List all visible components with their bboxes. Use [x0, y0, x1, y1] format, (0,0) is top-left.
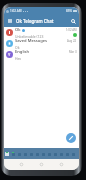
button[interactable]: Y: [4, 49, 79, 60]
staticText: Y: [8, 52, 11, 57]
button[interactable]: App 9: [53, 152, 57, 156]
staticText: 85%: [66, 9, 72, 13]
button[interactable]: Home: [38, 161, 45, 168]
staticText: 1:02 AM: [66, 28, 77, 32]
button[interactable]: Ok: [4, 27, 79, 38]
button[interactable]: App 5: [29, 152, 33, 156]
button[interactable]: App 4: [23, 152, 27, 156]
staticText: 1:02 AM: [10, 9, 22, 13]
button[interactable]: Back: [18, 161, 25, 168]
button[interactable]: App 11: [65, 152, 69, 156]
staticText: Unbelievable (123: [15, 34, 44, 38]
button[interactable]: App 8: [47, 152, 51, 156]
button[interactable]: Compose new message: [66, 133, 76, 143]
button[interactable]: App 7: [41, 152, 45, 156]
button[interactable]: Menu: [6, 17, 14, 25]
button[interactable]: Recents: [58, 161, 65, 168]
button[interactable]: App 6: [35, 152, 39, 156]
staticText: Saved Messages: [15, 38, 48, 44]
button[interactable]: App 3: [17, 152, 21, 156]
button[interactable]: App 10: [59, 152, 63, 156]
staticText: English: [15, 49, 30, 55]
staticText: Ok: [15, 45, 20, 49]
staticText: Aug 22: [67, 39, 77, 43]
staticText: Ok Telegram Chat: [16, 18, 54, 24]
button[interactable]: Search: [69, 17, 77, 25]
button[interactable]: App 1: [5, 152, 9, 156]
staticText: Hey: [15, 56, 22, 60]
button[interactable]: App 2: [11, 152, 15, 156]
staticText: Ok: [15, 27, 21, 33]
button[interactable]: Saved Messages: [4, 38, 79, 49]
button[interactable]: App 12: [71, 152, 75, 156]
staticText: Mar 3: [69, 50, 77, 54]
